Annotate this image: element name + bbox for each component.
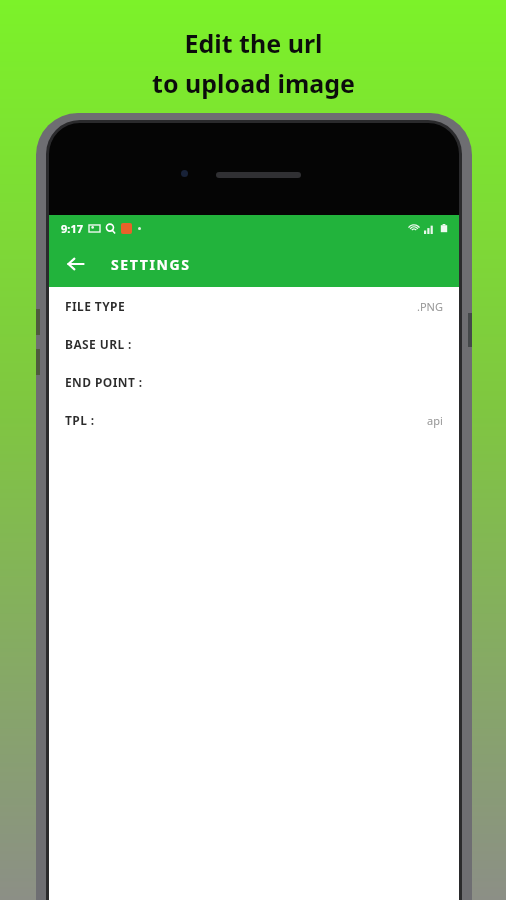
staticText: Edit the url: [184, 26, 323, 60]
staticText: 9:17: [61, 221, 83, 236]
staticText: BASE URL :: [65, 336, 132, 352]
staticText: END POINT :: [65, 374, 143, 390]
button[interactable]: TPL :: [49, 401, 459, 439]
staticText: .PNG: [417, 299, 443, 314]
staticText: TPL :: [65, 412, 95, 428]
staticText: SETTINGS: [111, 255, 191, 274]
staticText: FILE TYPE: [65, 298, 126, 314]
button[interactable]: END POINT :: [49, 363, 459, 401]
staticText: to upload image: [152, 66, 355, 100]
staticText: api: [427, 413, 443, 428]
button[interactable]: Back: [57, 245, 95, 283]
button[interactable]: BASE URL :: [49, 325, 459, 363]
button[interactable]: FILE TYPE: [49, 287, 459, 325]
